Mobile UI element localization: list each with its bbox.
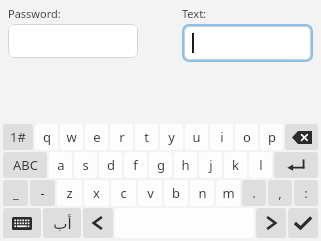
staticText: m bbox=[222, 184, 235, 202]
staticText: p bbox=[268, 128, 276, 146]
staticText: t bbox=[144, 128, 149, 146]
button[interactable]: r bbox=[110, 124, 133, 150]
button[interactable]: f bbox=[124, 152, 147, 178]
button[interactable]: n bbox=[190, 180, 214, 206]
staticText: f bbox=[133, 156, 138, 174]
staticText: o bbox=[243, 128, 251, 146]
staticText: j bbox=[209, 156, 213, 174]
button[interactable]: s bbox=[74, 152, 97, 178]
button[interactable]: q bbox=[35, 124, 58, 150]
button[interactable]: m bbox=[216, 180, 240, 206]
button[interactable]: Next bbox=[256, 208, 286, 238]
staticText: h bbox=[181, 156, 190, 174]
staticText: . bbox=[252, 184, 256, 202]
staticText: أب bbox=[53, 215, 72, 232]
button[interactable]: p bbox=[260, 124, 283, 150]
staticText: a bbox=[57, 156, 65, 174]
staticText: i bbox=[220, 128, 224, 146]
button[interactable]: v bbox=[138, 180, 162, 206]
button[interactable]: i bbox=[210, 124, 233, 150]
button[interactable]: Previous bbox=[83, 208, 113, 238]
button[interactable] bbox=[184, 26, 311, 60]
button[interactable]: e bbox=[85, 124, 108, 150]
button[interactable]: j bbox=[199, 152, 222, 178]
staticText: w bbox=[66, 128, 77, 146]
button[interactable]: a bbox=[49, 152, 72, 178]
button[interactable]: h bbox=[174, 152, 197, 178]
staticText: v bbox=[147, 184, 154, 202]
button[interactable]: Backspace bbox=[285, 124, 318, 150]
staticText: u bbox=[192, 128, 201, 146]
staticText: y bbox=[168, 128, 175, 146]
button[interactable]: b bbox=[164, 180, 188, 206]
button[interactable]: t bbox=[135, 124, 158, 150]
button[interactable]: c bbox=[111, 180, 136, 206]
staticText: r bbox=[119, 128, 125, 146]
staticText: : bbox=[304, 184, 308, 202]
button[interactable]: y bbox=[160, 124, 183, 150]
button[interactable]: ABC bbox=[3, 152, 47, 178]
staticText: - bbox=[40, 184, 45, 202]
button[interactable]: g bbox=[149, 152, 172, 178]
staticText: b bbox=[172, 184, 180, 202]
staticText: l bbox=[259, 156, 263, 174]
button[interactable] bbox=[8, 24, 138, 58]
button[interactable]: : bbox=[294, 180, 318, 206]
button[interactable]: x bbox=[84, 180, 109, 206]
staticText: _ bbox=[13, 184, 19, 202]
button[interactable]: u bbox=[185, 124, 208, 150]
staticText: , bbox=[278, 184, 282, 202]
staticText: ABC bbox=[13, 156, 38, 174]
staticText: 1# bbox=[10, 128, 26, 146]
staticText: c bbox=[120, 184, 127, 202]
staticText: Password: bbox=[8, 6, 61, 21]
button[interactable]: w bbox=[60, 124, 83, 150]
staticText: z bbox=[66, 184, 73, 202]
button[interactable]: - bbox=[30, 180, 55, 206]
staticText: x bbox=[93, 184, 100, 202]
staticText: Text: bbox=[182, 6, 207, 21]
staticText: q bbox=[43, 128, 51, 146]
button[interactable]: . bbox=[242, 180, 266, 206]
staticText: d bbox=[107, 156, 115, 174]
button[interactable]: l bbox=[249, 152, 272, 178]
button[interactable]: Enter bbox=[274, 152, 318, 178]
staticText: g bbox=[157, 156, 165, 174]
button[interactable]: o bbox=[235, 124, 258, 150]
button[interactable]: k bbox=[224, 152, 247, 178]
button[interactable]: z bbox=[57, 180, 82, 206]
button[interactable]: , bbox=[268, 180, 292, 206]
button[interactable]: Done bbox=[288, 208, 318, 238]
button[interactable]: Switch keyboard bbox=[3, 208, 41, 238]
button[interactable]: أب bbox=[43, 208, 81, 238]
staticText: k bbox=[232, 156, 239, 174]
staticText: e bbox=[93, 128, 101, 146]
staticText: s bbox=[82, 156, 89, 174]
button[interactable]: _ bbox=[3, 180, 28, 206]
staticText: n bbox=[198, 184, 207, 202]
button[interactable]: 1# bbox=[3, 124, 33, 150]
button[interactable]: d bbox=[99, 152, 122, 178]
